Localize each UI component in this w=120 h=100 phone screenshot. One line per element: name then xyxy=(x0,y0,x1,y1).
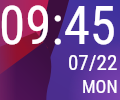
staticText: 09:45 xyxy=(0,0,117,57)
staticText: 07/22 xyxy=(68,51,118,76)
staticText: MON xyxy=(82,76,118,97)
button[interactable]: 09:45 xyxy=(0,0,119,57)
